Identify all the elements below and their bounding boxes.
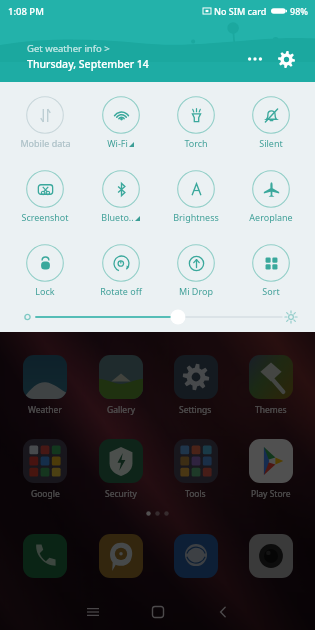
button[interactable]: Settings (158, 355, 233, 416)
button[interactable]: Wi-Fi (83, 96, 158, 149)
button[interactable]: Back (204, 597, 242, 627)
button[interactable]: Google (7, 439, 83, 500)
button[interactable]: Play Store (233, 439, 308, 500)
staticText: Mobile data (20, 137, 71, 149)
staticText: Aeroplane (249, 211, 293, 223)
button[interactable]: Torch (158, 96, 233, 149)
staticText: Settings (179, 404, 212, 416)
button[interactable]: Home (139, 597, 177, 627)
button[interactable]: Phone (7, 534, 83, 578)
button[interactable]: Security (83, 439, 158, 500)
staticText: Lock (35, 285, 55, 297)
button[interactable]: Mobile data (7, 96, 83, 149)
button[interactable]: Camera (233, 534, 308, 578)
staticText: Weather (28, 404, 62, 416)
button[interactable]: Silent (233, 96, 308, 149)
button[interactable]: Get weather info > (27, 42, 149, 71)
staticText: Google (31, 488, 60, 500)
button[interactable]: Settings (272, 45, 300, 73)
button[interactable]: Gallery (83, 355, 158, 416)
staticText: Wi-Fi (107, 137, 128, 149)
staticText: 98% (290, 5, 308, 17)
staticText: Sort (262, 285, 280, 297)
staticText: Blueto.. (101, 211, 134, 223)
staticText: Play Store (251, 488, 291, 500)
button[interactable]: Browser (158, 534, 233, 578)
staticText: Rotate off (100, 285, 142, 297)
staticText: Silent (259, 137, 283, 149)
button[interactable]: Tools (158, 439, 233, 500)
button[interactable]: Lock (7, 244, 83, 297)
staticText: No SIM card (214, 5, 267, 17)
button[interactable]: Screenshot (7, 170, 83, 223)
staticText: Torch (184, 137, 208, 149)
staticText: Thursday, September 14 (27, 57, 149, 71)
staticText: Get weather info > (27, 42, 110, 55)
staticText: Screenshot (21, 211, 69, 223)
staticText: 1:08 PM (8, 5, 44, 18)
staticText: Brightness (173, 211, 219, 223)
button[interactable]: Mi Drop (158, 244, 233, 297)
button[interactable]: Messaging (83, 534, 158, 578)
button[interactable]: Rotate off (83, 244, 158, 297)
button[interactable]: Brightness (158, 170, 233, 223)
staticText: Gallery (107, 404, 135, 416)
staticText: Tools (185, 488, 206, 500)
staticText: Mi Drop (179, 285, 213, 297)
staticText: Themes (255, 404, 287, 416)
button[interactable]: Blueto.. (83, 170, 158, 223)
button[interactable]: More options (243, 47, 267, 71)
button[interactable]: Weather (7, 355, 83, 416)
staticText: Security (105, 488, 137, 500)
button[interactable]: Menu (74, 597, 112, 627)
button[interactable]: Themes (233, 355, 308, 416)
button[interactable]: Aeroplane (233, 170, 308, 223)
button[interactable]: Sort (233, 244, 308, 297)
